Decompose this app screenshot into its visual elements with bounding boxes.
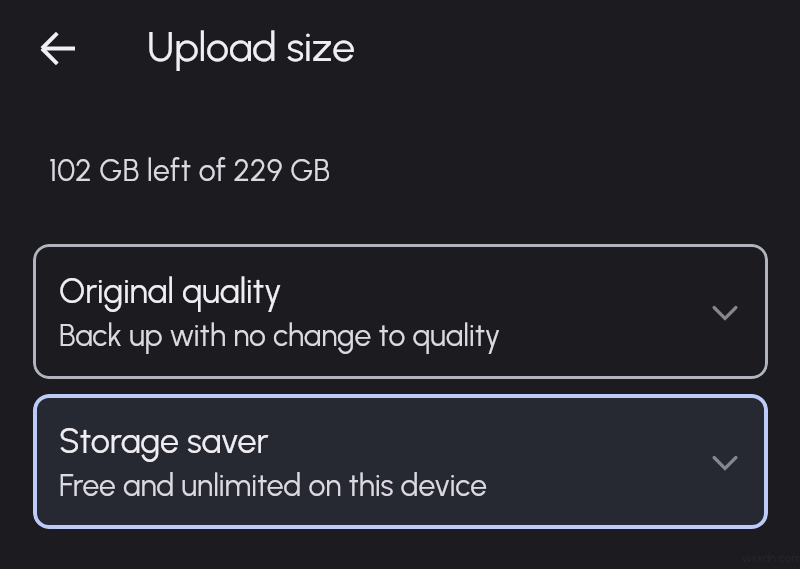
button[interactable]: Expand Original quality bbox=[701, 289, 749, 337]
staticText: 102 GB left of 229 GB bbox=[49, 152, 331, 188]
button[interactable]: Navigate up bbox=[33, 24, 81, 72]
staticText: Storage saver bbox=[59, 421, 269, 462]
button[interactable]: Expand Storage saver bbox=[701, 439, 749, 487]
staticText: Upload size bbox=[147, 22, 356, 71]
staticText: Free and unlimited on this device bbox=[59, 467, 488, 503]
button[interactable]: Storage saver bbox=[33, 394, 768, 529]
button[interactable]: Original quality bbox=[33, 244, 768, 379]
staticText: Original quality bbox=[59, 271, 282, 312]
staticText: Back up with no change to quality bbox=[59, 317, 501, 353]
